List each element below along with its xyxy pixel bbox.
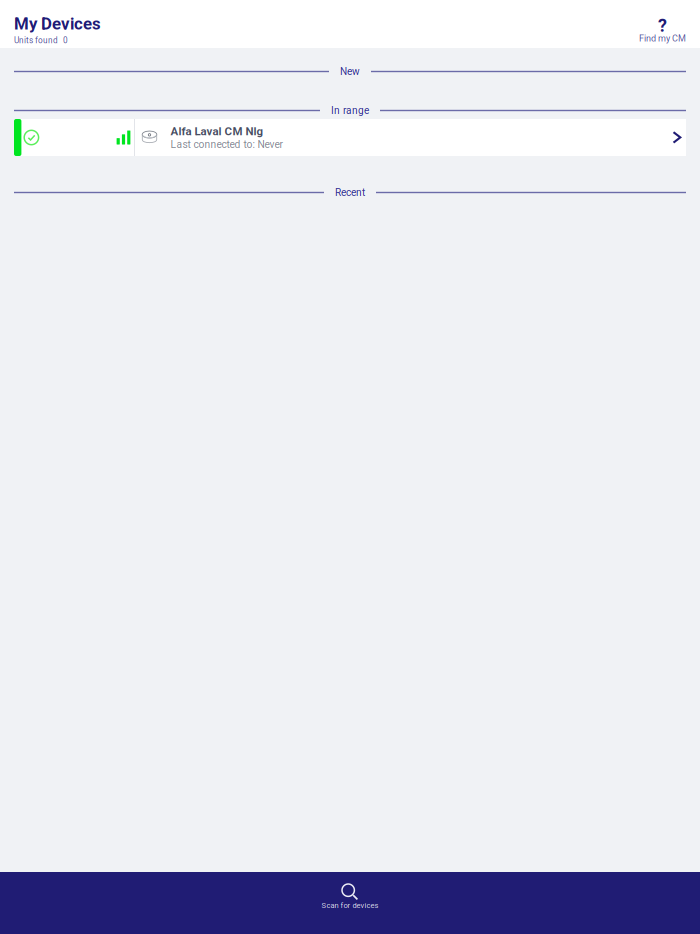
staticText: New: [340, 66, 360, 77]
staticText: Units found: [14, 35, 58, 45]
staticText: 0: [63, 35, 68, 45]
button[interactable]: Alfa Laval CM Nlg: [14, 119, 686, 156]
staticText: ?: [658, 15, 667, 36]
staticText: My Devices: [14, 14, 101, 34]
staticText: Alfa Laval CM Nlg: [170, 124, 263, 138]
button[interactable]: Scan for devices: [0, 872, 700, 934]
staticText: Last connected to: Never: [170, 138, 282, 150]
staticText: In range: [331, 105, 369, 116]
staticText: Find my CM: [639, 33, 686, 44]
staticText: Scan for devices: [321, 901, 378, 910]
button[interactable]: ?: [639, 0, 686, 41]
staticText: Recent: [335, 187, 365, 198]
